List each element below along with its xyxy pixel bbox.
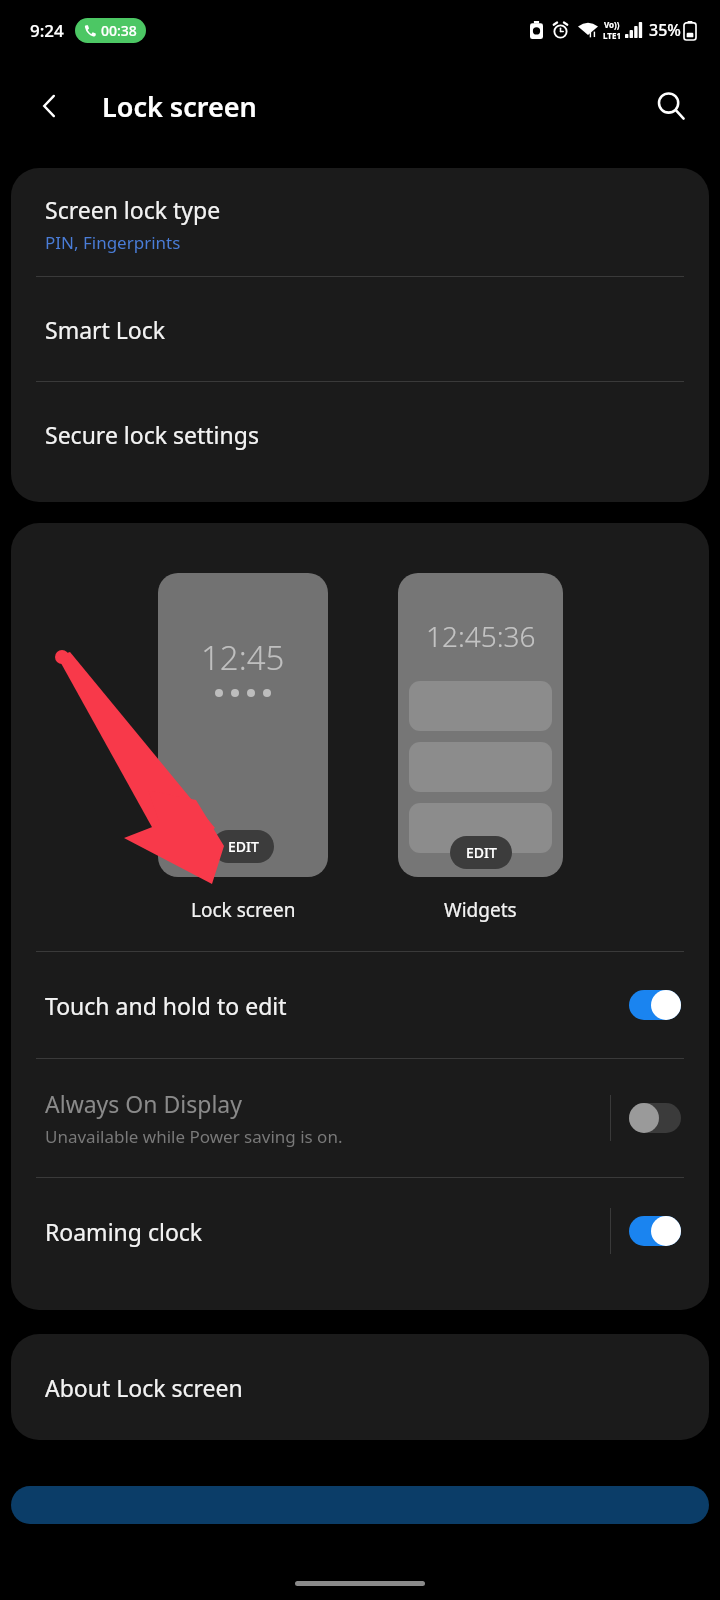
staticText: 9:24 bbox=[30, 19, 64, 42]
staticText: Roaming clock bbox=[45, 1216, 203, 1247]
button[interactable]: EDIT bbox=[450, 836, 512, 869]
staticText: 00:38 bbox=[101, 21, 137, 40]
button[interactable]: Always On Display bbox=[11, 1059, 709, 1177]
staticText: Widgets bbox=[444, 897, 517, 923]
staticText: PIN, Fingerprints bbox=[45, 231, 181, 254]
staticText: Lock screen bbox=[191, 897, 296, 923]
button[interactable]: Screen lock type bbox=[11, 168, 709, 276]
button[interactable]: Touch and hold to edit bbox=[11, 952, 709, 1058]
button[interactable]: Roaming clock bbox=[11, 1178, 709, 1284]
staticText: Unavailable while Power saving is on. bbox=[45, 1125, 343, 1148]
staticText: EDIT bbox=[466, 843, 497, 862]
staticText: Secure lock settings bbox=[45, 419, 259, 450]
staticText: EDIT bbox=[228, 837, 259, 856]
staticText: About Lock screen bbox=[45, 1372, 243, 1403]
button[interactable]: 12:45 bbox=[158, 573, 328, 877]
button[interactable]: EDIT bbox=[212, 830, 274, 863]
button[interactable]: About Lock screen bbox=[11, 1334, 709, 1440]
staticText: Smart Lock bbox=[45, 314, 166, 345]
button[interactable] bbox=[629, 1102, 681, 1134]
button[interactable]: Secure lock settings bbox=[11, 382, 709, 486]
staticText: Lock screen bbox=[102, 88, 257, 125]
button[interactable] bbox=[629, 1215, 681, 1247]
staticText: Screen lock type bbox=[45, 194, 221, 225]
button[interactable]: Smart Lock bbox=[11, 277, 709, 381]
staticText: Touch and hold to edit bbox=[45, 990, 287, 1021]
staticText: Always On Display bbox=[45, 1088, 242, 1119]
button[interactable] bbox=[629, 989, 681, 1021]
staticText: Vo)) bbox=[604, 19, 620, 30]
staticText: LTE1 bbox=[603, 30, 621, 41]
button[interactable]: Search bbox=[642, 77, 700, 135]
staticText: 12:45:36 bbox=[426, 617, 536, 655]
button[interactable]: Back bbox=[22, 78, 78, 134]
button[interactable]: 12:45:36 bbox=[398, 573, 563, 877]
staticText: 35% bbox=[649, 19, 681, 41]
staticText: 12:45 bbox=[201, 635, 285, 680]
